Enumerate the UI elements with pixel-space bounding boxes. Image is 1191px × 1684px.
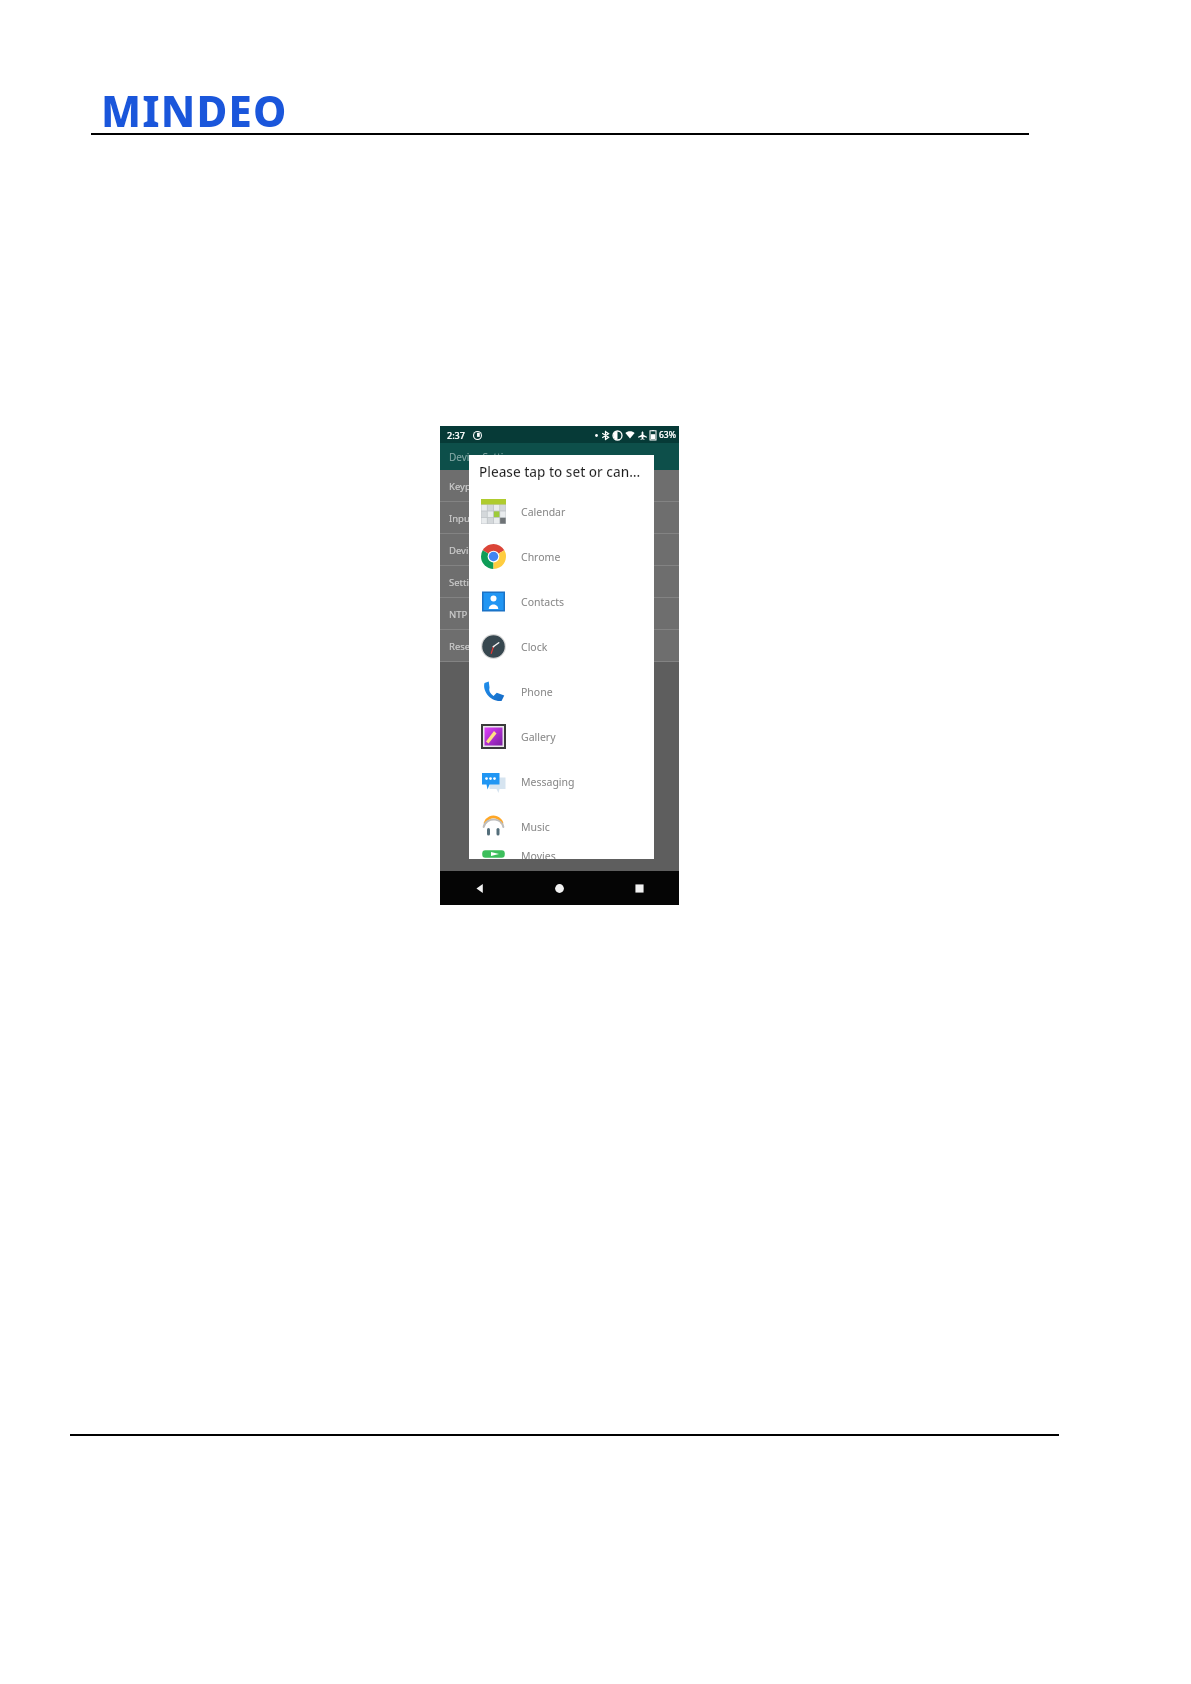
button[interactable]: Keypad bbox=[440, 470, 679, 502]
button[interactable]: Settings bbox=[440, 566, 679, 598]
button[interactable]: Reset bbox=[440, 630, 679, 662]
button[interactable]: Calendar bbox=[469, 489, 654, 534]
staticText: Calendar bbox=[521, 505, 566, 519]
staticText: 2:37 bbox=[447, 429, 465, 441]
staticText: Keypad bbox=[449, 480, 482, 493]
button[interactable]: Phone bbox=[469, 669, 654, 714]
staticText: MINDEO bbox=[101, 82, 288, 139]
button[interactable]: Recent apps bbox=[599, 871, 679, 905]
staticText: Reset bbox=[449, 640, 474, 653]
button[interactable]: NTP server bbox=[440, 598, 679, 630]
staticText: Chrome bbox=[521, 550, 561, 564]
staticText: Input method bbox=[449, 512, 511, 525]
button[interactable]: Messaging bbox=[469, 759, 654, 804]
staticText: NTP server bbox=[449, 608, 498, 621]
staticText: Clock bbox=[521, 640, 548, 654]
staticText: Please tap to set or can… bbox=[479, 463, 641, 481]
staticText: Phone bbox=[521, 685, 553, 699]
button[interactable]: Movies bbox=[469, 849, 654, 859]
button[interactable]: Input method bbox=[440, 502, 679, 534]
button[interactable]: Back bbox=[440, 871, 519, 905]
staticText: Gallery bbox=[521, 730, 556, 744]
staticText: Settings bbox=[449, 576, 486, 589]
staticText: Contacts bbox=[521, 595, 565, 609]
staticText: Messaging bbox=[521, 775, 575, 789]
staticText: Music bbox=[521, 820, 550, 834]
button[interactable]: Clock bbox=[469, 624, 654, 669]
button[interactable]: Device bbox=[440, 534, 679, 566]
button[interactable]: Gallery bbox=[469, 714, 654, 759]
button[interactable]: Music bbox=[469, 804, 654, 849]
button[interactable]: Contacts bbox=[469, 579, 654, 624]
staticText: Device bbox=[449, 544, 479, 557]
staticText: Movies bbox=[521, 849, 556, 859]
button[interactable]: Home bbox=[519, 871, 599, 905]
staticText: 63% bbox=[659, 429, 676, 441]
staticText: Device Settings bbox=[449, 450, 521, 464]
button[interactable]: Chrome bbox=[469, 534, 654, 579]
